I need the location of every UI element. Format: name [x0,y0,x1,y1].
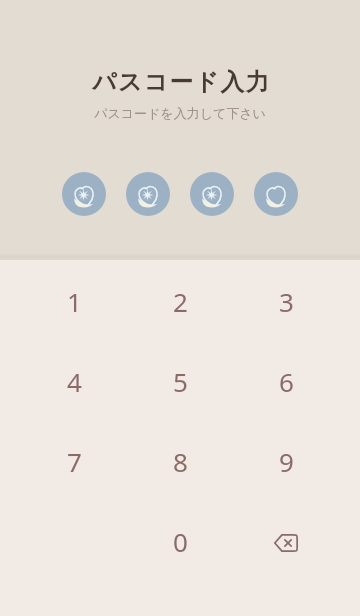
staticText: 1 [67,284,82,319]
staticText: 7 [67,444,82,479]
staticText: 8 [173,444,188,479]
staticText: 6 [279,364,294,399]
staticText: パスコードを入力して下さい [94,105,266,121]
button[interactable]: Backspace [233,501,339,581]
button[interactable]: 2 [127,261,233,341]
button[interactable]: 5 [127,341,233,421]
button[interactable]: 8 [127,421,233,501]
button[interactable]: 9 [233,421,339,501]
button[interactable]: 4 [21,341,127,421]
button[interactable]: 3 [233,261,339,341]
button[interactable]: 6 [233,341,339,421]
staticText: 2 [173,284,188,319]
staticText: 9 [279,444,294,479]
staticText: 3 [279,284,294,319]
button[interactable]: 7 [21,421,127,501]
staticText: 4 [67,364,82,399]
staticText: 5 [173,364,188,399]
staticText: パスコード入力 [92,67,271,97]
button[interactable]: 1 [21,261,127,341]
button[interactable]: 0 [127,501,233,581]
staticText: 0 [173,524,188,559]
